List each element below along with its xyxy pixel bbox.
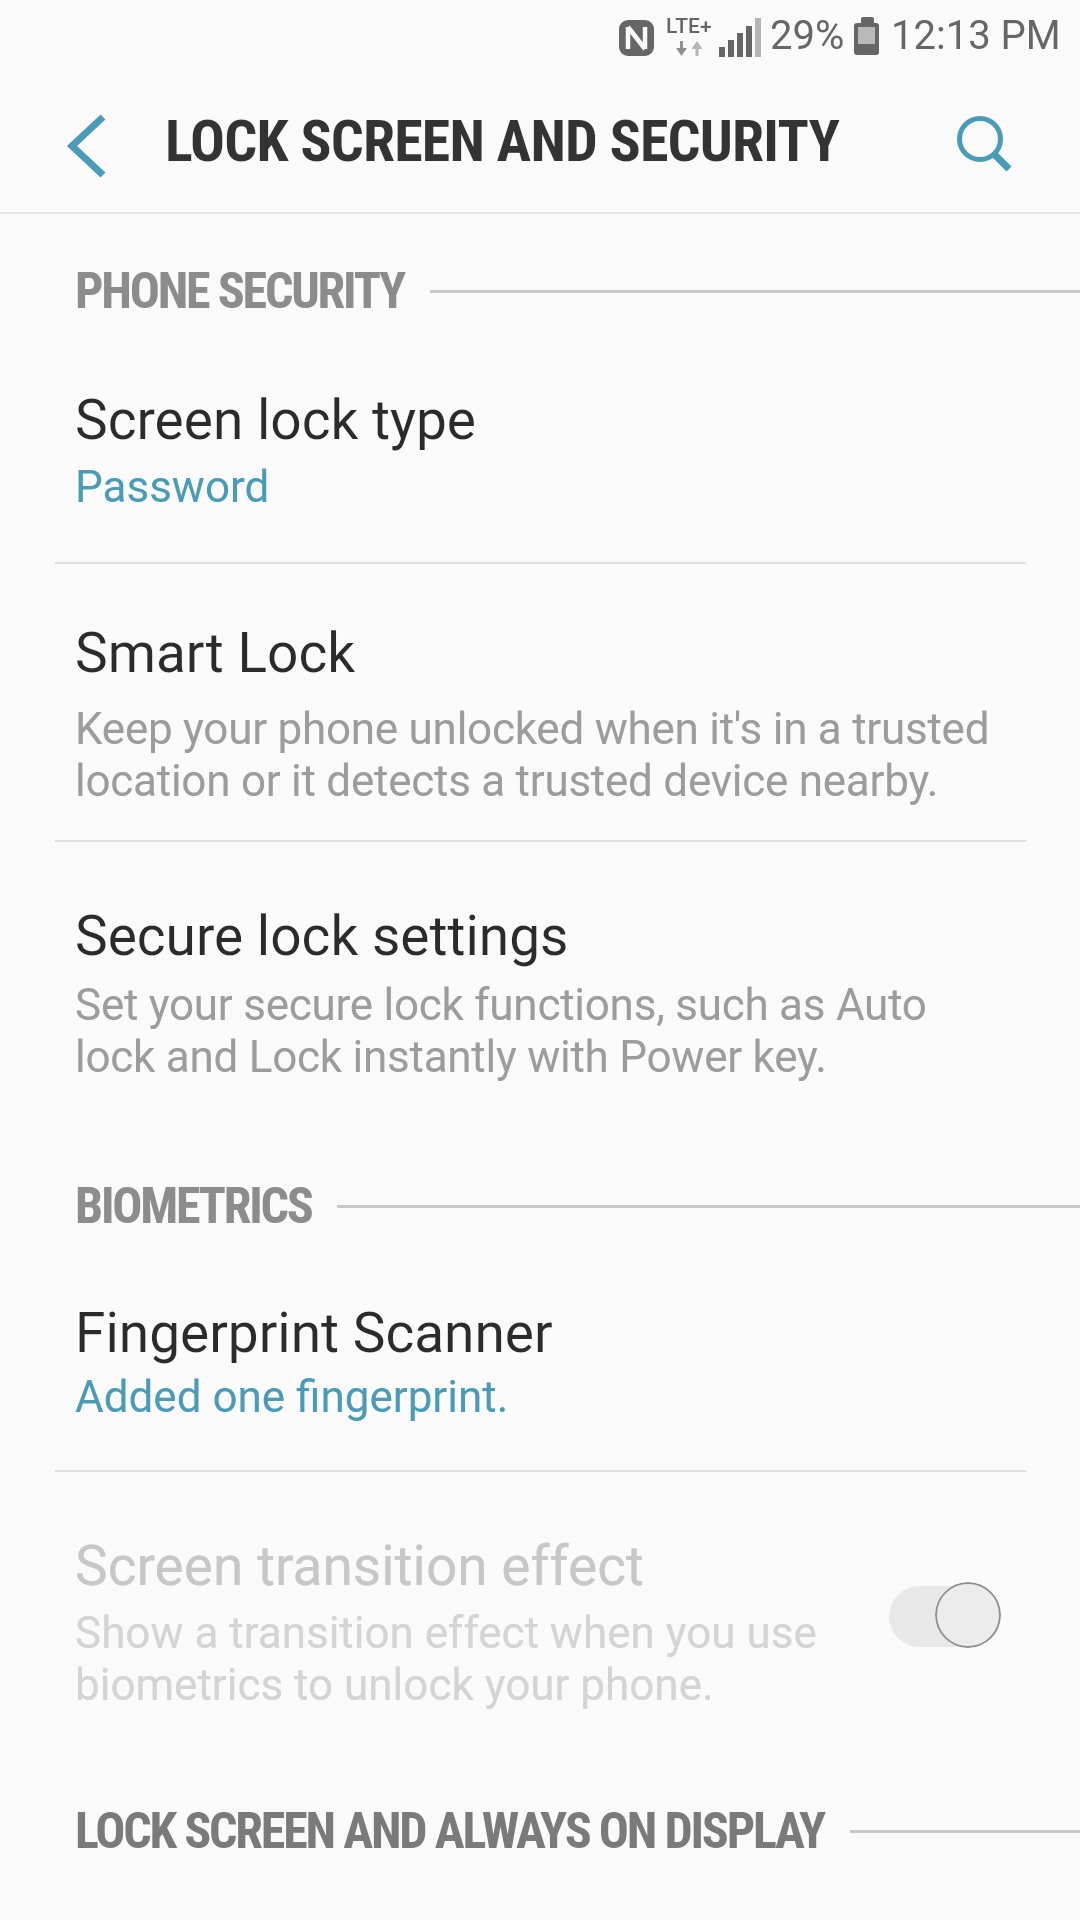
button[interactable]: Secure lock settings (0, 842, 1080, 1152)
button[interactable]: Fingerprint Scanner (0, 1248, 1080, 1470)
staticText: PHONE SECURITY (75, 262, 405, 321)
staticText: Password (75, 461, 270, 513)
staticText: LOCK SCREEN AND SECURITY (165, 107, 840, 175)
button[interactable]: Screen transition effect (0, 1472, 1080, 1762)
staticText: Added one fingerprint. (75, 1371, 509, 1423)
staticText: Smart Lock (75, 621, 356, 685)
staticText: Fingerprint Scanner (75, 1301, 553, 1365)
button[interactable] (925, 90, 1040, 200)
staticText: Screen lock type (75, 388, 477, 452)
staticText: Set your secure lock functions, such as … (75, 979, 927, 1083)
button[interactable]: Smart Lock (0, 564, 1080, 840)
staticText: Secure lock settings (75, 904, 569, 968)
staticText: 29% (770, 12, 845, 59)
button[interactable] (50, 98, 140, 193)
button[interactable]: Screen lock type (0, 335, 1080, 562)
staticText: Show a transition effect when you use bi… (75, 1607, 817, 1711)
staticText: Keep your phone unlocked when it's in a … (75, 703, 990, 807)
staticText: 12:13 PM (891, 12, 1061, 59)
staticText: BIOMETRICS (75, 1177, 312, 1236)
staticText: LTE+ (666, 14, 712, 39)
staticText: LOCK SCREEN AND ALWAYS ON DISPLAY (75, 1802, 825, 1861)
staticText: Screen transition effect (75, 1534, 644, 1598)
